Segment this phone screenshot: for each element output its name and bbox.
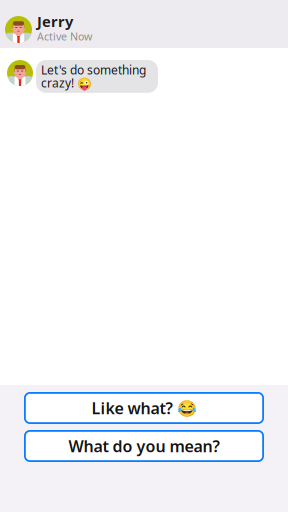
staticText: Like what? 😂 <box>91 397 196 419</box>
staticText: crazy! 😜 <box>41 75 92 91</box>
staticText: Let's do something <box>41 62 146 78</box>
button[interactable]: Jerry <box>0 0 288 48</box>
button[interactable]: Like what? 😂 <box>24 392 264 424</box>
staticText: Active Now <box>37 29 92 43</box>
button[interactable]: What do you mean? <box>24 430 264 462</box>
staticText: What do you mean? <box>68 435 219 457</box>
staticText: Jerry <box>37 12 73 31</box>
